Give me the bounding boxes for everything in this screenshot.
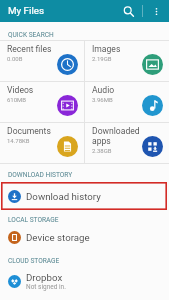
staticText: Not signed in. <box>26 283 66 291</box>
staticText: Documents <box>7 126 51 136</box>
staticText: DOWNLOAD HISTORY <box>8 171 73 179</box>
staticText: 2.19GB <box>92 55 112 62</box>
button[interactable]: More options <box>145 0 167 22</box>
staticText: Downloaded apps <box>92 126 140 146</box>
staticText: Images <box>92 44 121 54</box>
staticText: Device storage <box>26 232 90 243</box>
staticText: 0.00B <box>7 55 23 62</box>
staticText: 610MB <box>7 96 27 103</box>
staticText: CLOUD STORAGE <box>8 257 60 265</box>
staticText: Audio <box>92 85 115 95</box>
staticText: QUICK SEARCH <box>8 31 54 39</box>
button[interactable]: Downloaded apps <box>85 123 169 163</box>
button[interactable]: Recent files <box>0 41 84 81</box>
button[interactable]: Documents <box>0 123 84 163</box>
staticText: My Files <box>8 5 45 16</box>
staticText: LOCAL STORAGE <box>8 216 59 224</box>
button[interactable]: Images <box>85 41 169 81</box>
button[interactable]: Device storage <box>0 224 169 250</box>
staticText: 2.38GB <box>92 147 112 154</box>
staticText: Download history <box>26 191 101 202</box>
staticText: Recent files <box>7 44 52 54</box>
button[interactable]: Audio <box>85 82 169 122</box>
button[interactable]: Videos <box>0 82 84 122</box>
staticText: Dropbox <box>26 272 63 283</box>
staticText: 3.96MB <box>92 96 113 103</box>
button[interactable]: Dropbox <box>0 267 169 295</box>
staticText: 14.78KB <box>7 137 30 144</box>
button[interactable]: Download history <box>0 182 169 210</box>
staticText: Videos <box>7 85 34 95</box>
button[interactable]: Search <box>117 0 139 22</box>
